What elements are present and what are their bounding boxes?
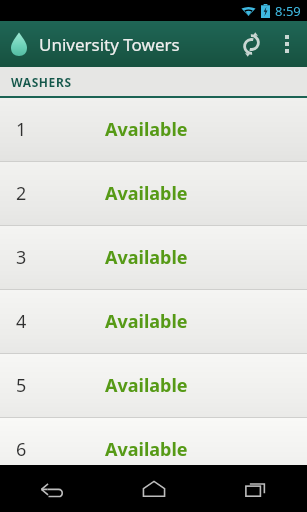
- staticText: 5: [16, 373, 27, 398]
- button[interactable]: Back: [0, 465, 103, 512]
- staticText: 1: [16, 117, 27, 142]
- staticText: Available: [105, 245, 188, 270]
- button[interactable]: 6: [0, 418, 307, 481]
- staticText: 6: [16, 437, 27, 462]
- staticText: 8:59: [275, 2, 301, 20]
- staticText: Available: [105, 437, 188, 462]
- staticText: University Towers: [39, 33, 180, 56]
- button[interactable]: 2: [0, 162, 307, 225]
- staticText: 3: [16, 245, 27, 270]
- button[interactable]: 3: [0, 226, 307, 289]
- button[interactable]: Refresh: [231, 21, 271, 67]
- button[interactable]: More options: [271, 21, 303, 67]
- staticText: Available: [105, 117, 188, 142]
- staticText: Available: [105, 373, 188, 398]
- staticText: 4: [16, 309, 27, 334]
- staticText: WASHERS: [11, 74, 72, 90]
- button[interactable]: 4: [0, 290, 307, 353]
- staticText: 2: [16, 181, 27, 206]
- button[interactable]: 1: [0, 98, 307, 161]
- button[interactable]: Recent apps: [205, 465, 307, 512]
- staticText: Available: [105, 309, 188, 334]
- staticText: Available: [105, 181, 188, 206]
- button[interactable]: Home: [103, 465, 205, 512]
- button[interactable]: 5: [0, 354, 307, 417]
